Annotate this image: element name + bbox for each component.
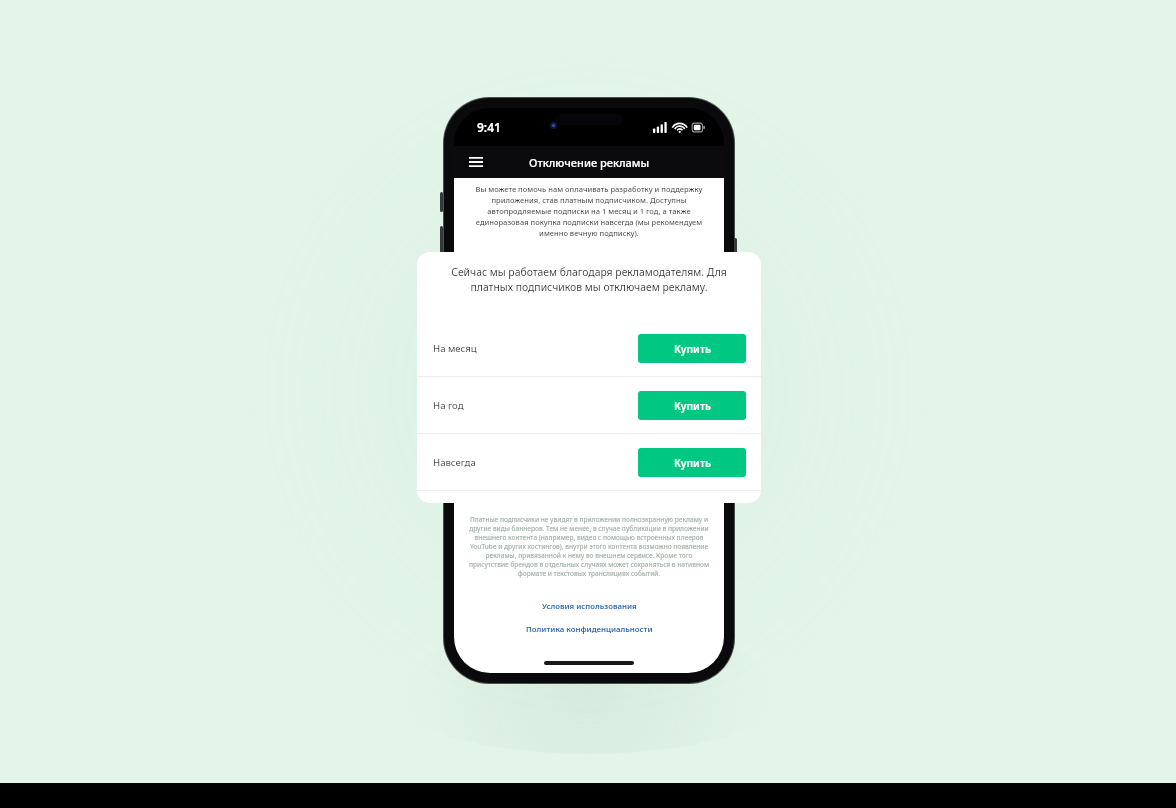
staticText: Платные подписчики не увидят в приложени… bbox=[465, 515, 713, 578]
staticText: Купить bbox=[674, 342, 711, 356]
staticText: Политика конфиденциальности bbox=[526, 624, 653, 635]
button[interactable]: На год bbox=[417, 377, 761, 433]
staticText: Купить bbox=[674, 456, 711, 470]
button[interactable]: Условия использования bbox=[465, 598, 713, 614]
staticText: 9:41 bbox=[477, 119, 501, 135]
staticText: Сейчас мы работаем благодаря рекламодате… bbox=[432, 265, 746, 294]
staticText: На год bbox=[433, 399, 464, 412]
staticText: Условия использования bbox=[542, 601, 637, 612]
staticText: Навсегда bbox=[433, 456, 476, 469]
button[interactable]: Навсегда bbox=[417, 434, 761, 490]
staticText: Вы можете помочь нам оплачивать разработ… bbox=[465, 184, 713, 238]
staticText: Купить bbox=[674, 399, 711, 413]
button[interactable]: Купить bbox=[638, 448, 746, 477]
staticText: На месяц bbox=[433, 342, 477, 355]
button[interactable]: Купить bbox=[638, 334, 746, 363]
staticText: Отключение рекламы bbox=[529, 155, 650, 170]
button[interactable]: Политика конфиденциальности bbox=[465, 621, 713, 637]
button[interactable]: Open navigation menu bbox=[463, 149, 489, 175]
button[interactable]: На месяц bbox=[417, 320, 761, 376]
button[interactable]: Купить bbox=[638, 391, 746, 420]
